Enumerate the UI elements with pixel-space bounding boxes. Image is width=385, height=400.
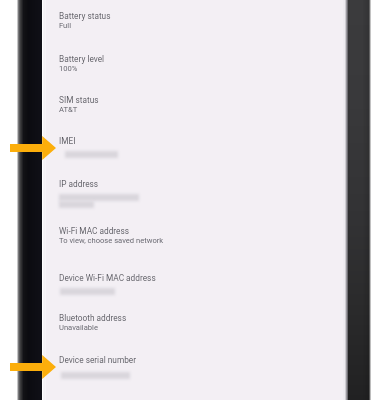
- staticText: To view, choose saved network: [59, 236, 164, 245]
- staticText: Unavailable: [59, 323, 98, 332]
- staticText: Wi-Fi MAC address: [59, 226, 130, 236]
- button[interactable]: SIM status: [45, 87, 344, 128]
- staticText: Battery level: [59, 54, 105, 64]
- staticText: Battery status: [59, 11, 111, 21]
- button[interactable]: IP address: [45, 171, 344, 218]
- button[interactable]: Device serial number: [45, 347, 344, 389]
- staticText: AT&T: [59, 105, 78, 114]
- staticText: Full: [59, 21, 71, 30]
- staticText: Device Wi-Fi MAC address: [59, 273, 156, 283]
- button[interactable]: Battery level: [45, 46, 344, 87]
- button[interactable]: Bluetooth address: [45, 305, 344, 346]
- staticText: SIM status: [59, 95, 99, 105]
- button[interactable]: Battery status: [45, 3, 344, 45]
- staticText: 100%: [59, 64, 78, 73]
- button[interactable]: Wi-Fi MAC address: [45, 218, 344, 264]
- staticText: Bluetooth address: [59, 313, 127, 323]
- staticText: Device serial number: [59, 355, 137, 365]
- button[interactable]: IMEI: [45, 128, 344, 171]
- other: Pointer to Device serial number: [10, 355, 56, 379]
- staticText: IP address: [59, 179, 99, 189]
- button[interactable]: Device Wi-Fi MAC address: [45, 265, 344, 305]
- other: Pointer to IMEI: [10, 136, 56, 160]
- staticText: IMEI: [59, 136, 76, 146]
